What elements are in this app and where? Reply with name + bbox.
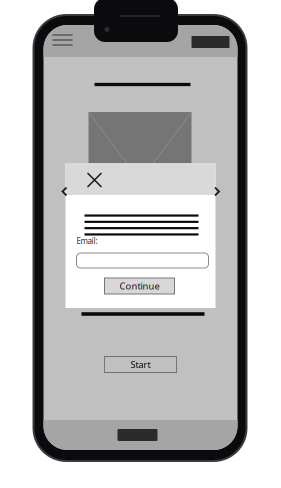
button[interactable]: Continue xyxy=(104,278,174,294)
button[interactable]: Menu xyxy=(47,28,77,52)
staticText: Start xyxy=(130,358,150,371)
button[interactable]: Next xyxy=(210,182,224,200)
button[interactable]: Close xyxy=(79,165,109,195)
staticText: Continue xyxy=(119,280,159,292)
button[interactable]: Start xyxy=(104,356,176,372)
button[interactable]: Action xyxy=(187,30,233,54)
button[interactable]: Previous xyxy=(57,182,71,200)
staticText: Email: xyxy=(76,236,97,246)
